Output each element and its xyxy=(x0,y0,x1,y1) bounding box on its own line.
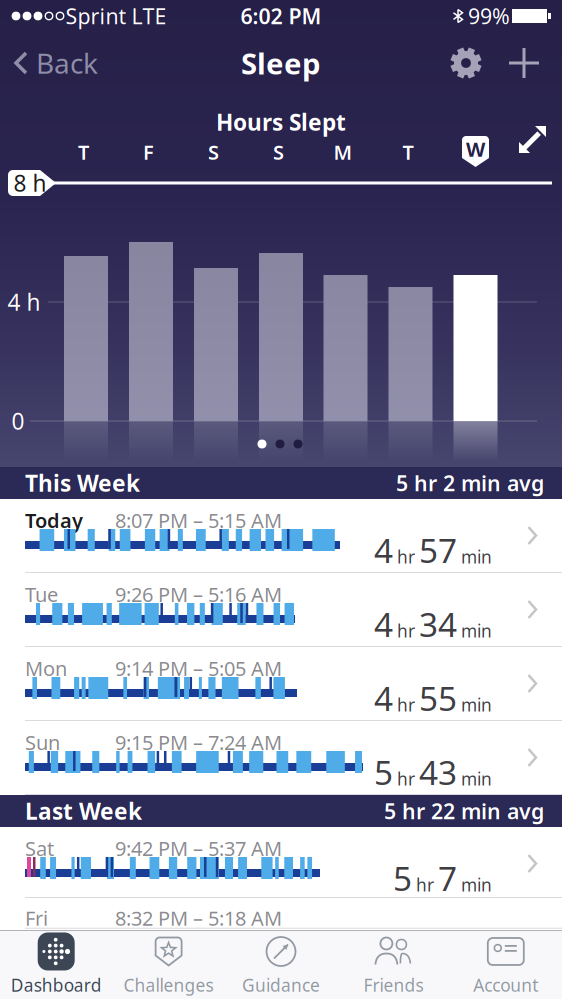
staticText: min xyxy=(461,545,492,568)
staticText: min xyxy=(461,619,492,642)
staticText: 57 xyxy=(419,528,457,572)
staticText: Dashboard xyxy=(11,973,102,996)
staticText: Today xyxy=(25,507,83,534)
staticText: Hours Slept xyxy=(216,107,346,137)
staticText: 4 h xyxy=(7,287,40,317)
staticText: hr xyxy=(397,545,415,568)
staticText: T xyxy=(78,139,89,165)
staticText: Sun xyxy=(25,729,60,756)
staticText: 4 xyxy=(374,528,393,572)
staticText: M xyxy=(333,139,352,165)
staticText: Sprint xyxy=(65,2,126,30)
staticText: S xyxy=(273,139,284,165)
staticText: 8 h xyxy=(13,168,46,198)
button[interactable]: Challenges xyxy=(112,930,225,999)
button[interactable]: Add sleep log xyxy=(506,45,542,81)
staticText: S xyxy=(208,139,219,165)
staticText: 9:42 PM – 5:37 AM xyxy=(115,835,282,862)
button[interactable]: Today xyxy=(0,499,562,573)
staticText: W xyxy=(466,136,485,162)
staticText: 9:14 PM – 5:05 AM xyxy=(115,655,282,682)
staticText: 5 xyxy=(393,856,412,900)
button[interactable]: Account xyxy=(450,930,562,999)
staticText: hr xyxy=(397,619,415,642)
button[interactable]: Fri xyxy=(0,898,562,930)
staticText: This Week xyxy=(25,468,140,498)
staticText: Back xyxy=(36,44,98,82)
staticText: Friends xyxy=(363,973,423,996)
staticText: 5 xyxy=(374,750,393,794)
button[interactable]: Dashboard xyxy=(0,930,112,999)
staticText: min xyxy=(461,873,492,896)
button[interactable]: Sat xyxy=(0,827,562,898)
staticText: hr xyxy=(397,693,415,716)
staticText: 4 xyxy=(374,602,393,646)
staticText: Tue xyxy=(25,581,58,608)
staticText: 99% xyxy=(468,2,510,30)
button[interactable]: Sun xyxy=(0,721,562,795)
button[interactable]: Back xyxy=(12,41,112,85)
staticText: 9:15 PM – 7:24 AM xyxy=(115,729,282,756)
staticText: hr xyxy=(397,767,415,790)
staticText: min xyxy=(461,693,492,716)
staticText: 8:32 PM – 5:18 AM xyxy=(115,905,282,931)
button[interactable]: Friends xyxy=(337,930,450,999)
staticText: 0 xyxy=(11,406,24,436)
staticText: 55 xyxy=(419,676,457,720)
button[interactable]: Guidance xyxy=(225,930,337,999)
staticText: 5 hr 22 min avg xyxy=(384,797,544,825)
button[interactable]: Mon xyxy=(0,647,562,721)
button[interactable]: Settings xyxy=(448,45,484,81)
staticText: Sleep xyxy=(241,43,321,82)
staticText: 34 xyxy=(419,602,457,646)
button[interactable]: Expand chart xyxy=(519,126,547,154)
staticText: 6:02 PM xyxy=(240,2,321,30)
staticText: 5 hr 2 min avg xyxy=(396,469,544,497)
staticText: Fri xyxy=(25,905,48,931)
staticText: 4 xyxy=(374,676,393,720)
staticText: Account xyxy=(473,973,538,996)
staticText: min xyxy=(461,767,492,790)
staticText: 43 xyxy=(419,750,457,794)
button[interactable]: Wednesday xyxy=(462,136,489,167)
staticText: hr xyxy=(416,873,434,896)
staticText: 8:07 PM – 5:15 AM xyxy=(115,507,282,534)
staticText: F xyxy=(143,139,154,165)
staticText: 7 xyxy=(438,856,457,900)
staticText: LTE xyxy=(131,2,166,30)
staticText: Challenges xyxy=(124,973,214,996)
staticText: Guidance xyxy=(242,973,320,996)
button[interactable]: Tue xyxy=(0,573,562,647)
staticText: T xyxy=(402,139,413,165)
staticText: 9:26 PM – 5:16 AM xyxy=(115,581,282,608)
staticText: Sat xyxy=(25,835,54,862)
staticText: Mon xyxy=(25,655,67,682)
staticText: Last Week xyxy=(25,796,142,826)
